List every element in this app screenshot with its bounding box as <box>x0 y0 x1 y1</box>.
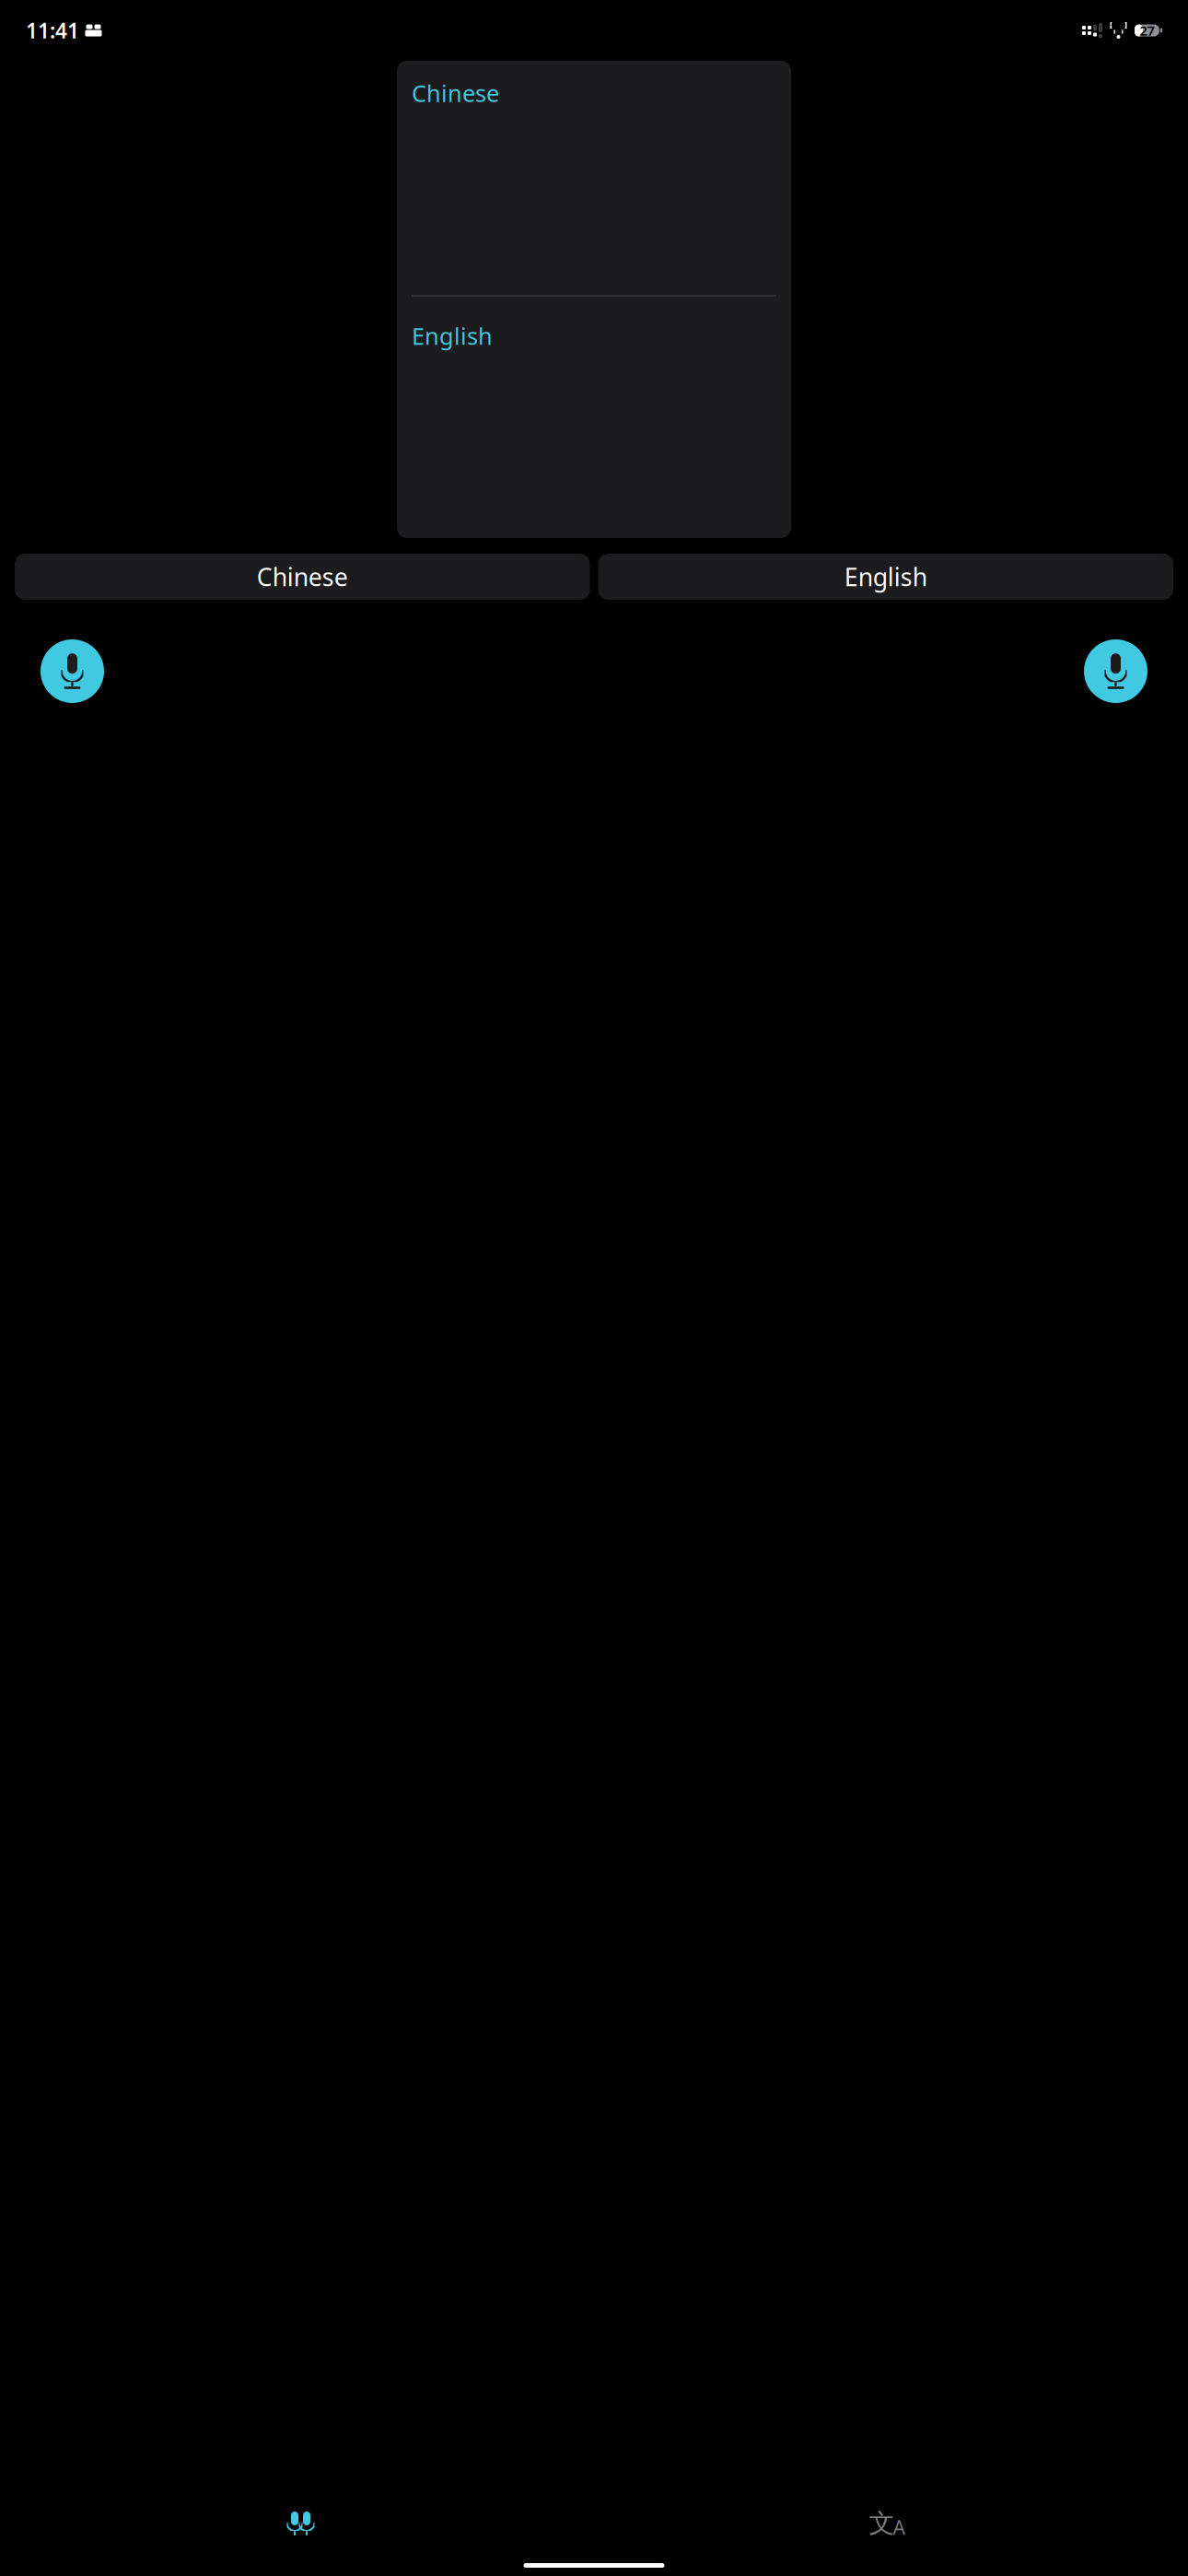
button[interactable]: Conversation <box>7 2500 594 2547</box>
staticText: Chinese <box>412 77 499 108</box>
staticText: 27 <box>1140 21 1154 39</box>
staticText: English <box>412 320 493 351</box>
button[interactable]: Chinese <box>15 554 590 600</box>
button[interactable]: Record English <box>1084 639 1147 703</box>
button[interactable]: Translate <box>594 2500 1181 2547</box>
staticText: English <box>844 560 927 593</box>
staticText: A <box>893 2514 906 2540</box>
button[interactable]: Record Chinese <box>41 639 104 703</box>
staticText: 文 <box>869 2508 895 2539</box>
button[interactable]: English <box>598 554 1173 600</box>
staticText: 11:41 <box>26 16 79 44</box>
staticText: Chinese <box>257 560 348 593</box>
